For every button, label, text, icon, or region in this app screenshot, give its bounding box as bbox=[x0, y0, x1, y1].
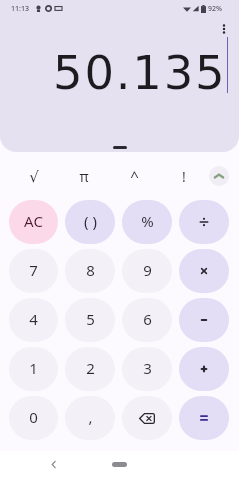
staticText: 9 bbox=[143, 260, 152, 280]
button[interactable]: Equals bbox=[179, 396, 229, 440]
staticText: 7 bbox=[29, 260, 38, 280]
staticText: AC bbox=[24, 211, 43, 231]
button[interactable]: π bbox=[59, 152, 109, 200]
staticText: 8 bbox=[86, 260, 95, 280]
button[interactable]: 3 bbox=[122, 347, 172, 391]
button[interactable]: 2 bbox=[65, 347, 115, 391]
button[interactable]: ( ) bbox=[65, 200, 115, 244]
staticText: π bbox=[79, 167, 89, 186]
button[interactable]: 4 bbox=[9, 298, 58, 342]
button[interactable]: 8 bbox=[65, 249, 115, 293]
button[interactable]: 5 bbox=[65, 298, 115, 342]
staticText: 3 bbox=[143, 358, 152, 378]
button[interactable]: √ bbox=[9, 152, 59, 200]
button[interactable]: , bbox=[65, 396, 115, 440]
button[interactable]: 7 bbox=[9, 249, 58, 293]
button[interactable]: More options bbox=[212, 17, 236, 41]
staticText: 2 bbox=[86, 358, 95, 378]
staticText: 1 bbox=[29, 358, 38, 378]
button[interactable]: Minus bbox=[179, 298, 229, 342]
staticText: 5 bbox=[86, 309, 95, 329]
button[interactable]: % bbox=[122, 200, 172, 244]
staticText: 0 bbox=[29, 407, 38, 427]
staticText: ( ) bbox=[84, 211, 97, 231]
button[interactable]: 6 bbox=[122, 298, 172, 342]
staticText: ^ bbox=[130, 166, 139, 186]
staticText: √ bbox=[29, 168, 39, 185]
staticText: 6 bbox=[143, 309, 152, 329]
button[interactable]: Expand keypad bbox=[209, 166, 229, 186]
button[interactable]: ^ bbox=[109, 152, 159, 200]
staticText: 11:13 bbox=[11, 4, 29, 14]
staticText: ! bbox=[182, 167, 186, 186]
button[interactable]: Back bbox=[43, 454, 63, 474]
button[interactable]: Plus bbox=[179, 347, 229, 391]
button[interactable]: Backspace bbox=[122, 396, 172, 440]
staticText: 92% bbox=[208, 4, 222, 14]
staticText: % bbox=[141, 211, 154, 231]
staticText: , bbox=[88, 407, 93, 427]
button[interactable]: 1 bbox=[9, 347, 58, 391]
button[interactable]: Home bbox=[112, 462, 127, 467]
button[interactable]: 0 bbox=[9, 396, 58, 440]
button[interactable]: 9 bbox=[122, 249, 172, 293]
button[interactable]: AC bbox=[9, 200, 58, 244]
button[interactable]: Multiply bbox=[179, 249, 229, 293]
staticText: 50.135 bbox=[53, 46, 227, 100]
staticText: 4 bbox=[29, 309, 38, 329]
button[interactable]: ! bbox=[159, 152, 209, 200]
button[interactable]: Divide bbox=[179, 200, 229, 244]
